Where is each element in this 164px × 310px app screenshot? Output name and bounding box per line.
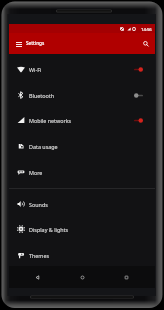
staticText: 14:56 [141, 27, 152, 33]
button[interactable]: Toggle Wi-Fi [129, 62, 147, 76]
button[interactable]: Mobile networks [9, 107, 155, 133]
button[interactable]: Data usage [9, 133, 155, 159]
staticText: Themes [29, 252, 50, 259]
button[interactable]: Recents [117, 266, 135, 288]
button[interactable]: Home [73, 266, 91, 288]
button[interactable]: Search [137, 33, 155, 54]
button[interactable]: Back [28, 266, 46, 288]
button[interactable]: Wi-Fi [9, 56, 155, 82]
staticText: Wi-Fi [29, 66, 42, 73]
button[interactable]: More [9, 159, 155, 185]
staticText: Mobile networks [29, 117, 72, 124]
button[interactable]: Toggle Mobile networks [129, 113, 147, 127]
button[interactable]: Bluetooth [9, 82, 155, 108]
staticText: Sounds [29, 201, 48, 208]
staticText: Display & lights [29, 226, 69, 233]
staticText: Data usage [29, 143, 58, 150]
button[interactable]: Themes [9, 242, 155, 268]
button[interactable]: Toggle Bluetooth [129, 88, 147, 102]
staticText: Bluetooth [29, 92, 55, 99]
staticText: More [29, 169, 43, 176]
staticText: Settings [26, 40, 45, 46]
button[interactable]: Open navigation drawer [9, 33, 28, 54]
button[interactable]: Display & lights [9, 216, 155, 242]
button[interactable]: Sounds [9, 191, 155, 217]
